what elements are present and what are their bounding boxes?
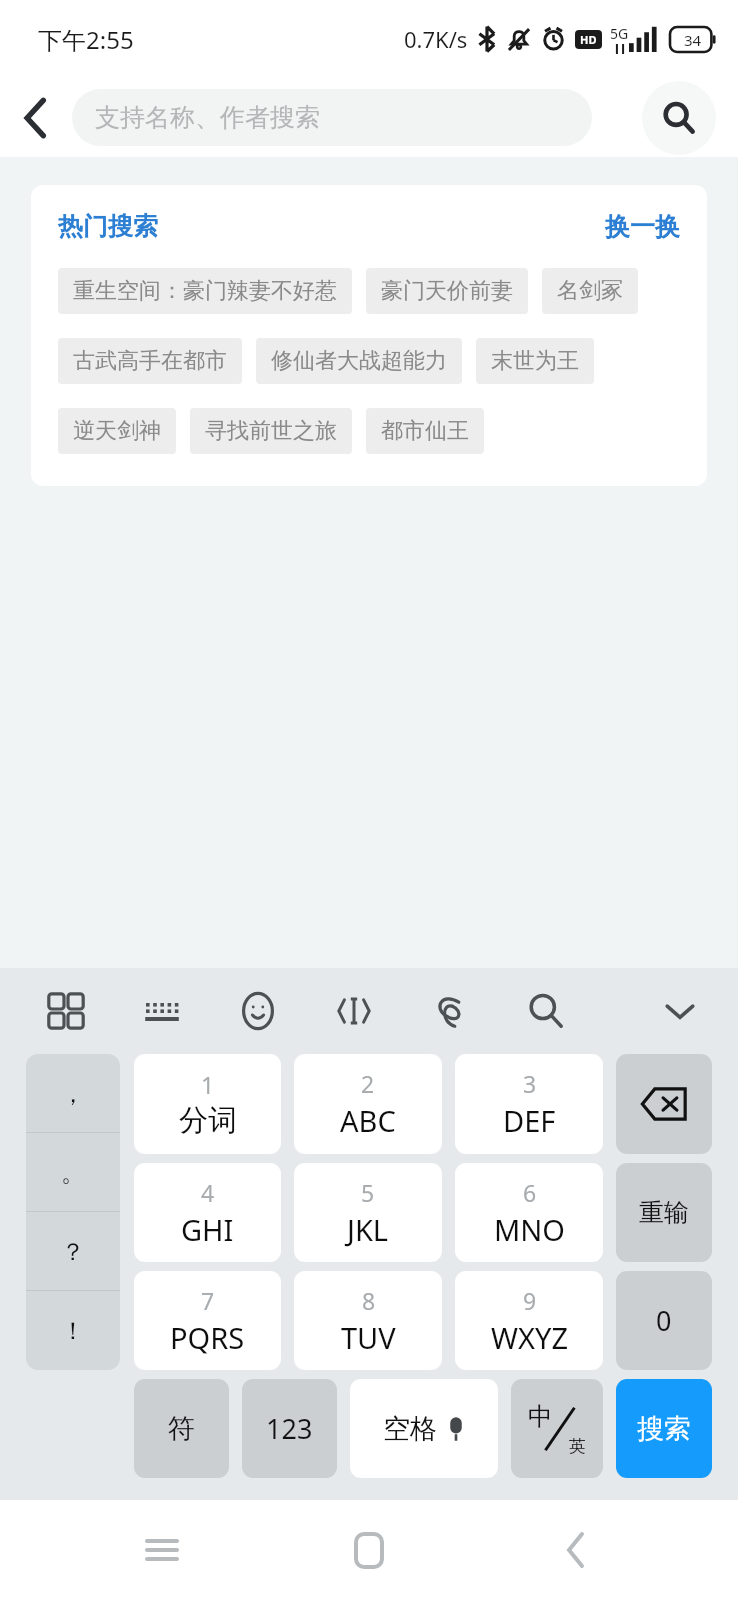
staticText: 支持名称、作者搜索 bbox=[95, 102, 320, 133]
button[interactable]: 4 bbox=[134, 1163, 281, 1262]
staticText: 古武高手在都市 bbox=[73, 347, 227, 375]
button[interactable] bbox=[616, 1054, 712, 1154]
staticText: ！ bbox=[61, 1316, 85, 1346]
button[interactable]: 支持名称、作者搜索 bbox=[72, 89, 592, 146]
button[interactable]: 名剑冢 bbox=[542, 268, 638, 314]
button[interactable]: 修仙者大战超能力 bbox=[256, 338, 462, 384]
staticText: 逆天剑神 bbox=[73, 417, 161, 445]
button[interactable]: Search bbox=[642, 81, 716, 155]
button[interactable]: 都市仙王 bbox=[366, 408, 484, 454]
button[interactable]: 7 bbox=[134, 1271, 281, 1370]
button[interactable]: 空格 bbox=[350, 1379, 498, 1478]
button[interactable]: 8 bbox=[294, 1271, 442, 1370]
button[interactable]: 寻找前世之旅 bbox=[190, 408, 352, 454]
staticText: 分词 bbox=[179, 1102, 237, 1139]
button[interactable]: Recents bbox=[117, 1505, 207, 1595]
button[interactable]: Keyboard bbox=[136, 985, 188, 1037]
staticText: 中 bbox=[528, 1401, 553, 1432]
staticText: 8 bbox=[362, 1285, 376, 1316]
staticText: TUV bbox=[341, 1318, 396, 1357]
button[interactable]: 3 bbox=[455, 1054, 603, 1154]
button[interactable]: Chinese English toggle bbox=[511, 1379, 603, 1478]
button[interactable]: 2 bbox=[294, 1054, 442, 1154]
button[interactable]: 9 bbox=[455, 1271, 603, 1370]
button[interactable]: Back bbox=[0, 82, 72, 154]
button[interactable]: 符 bbox=[134, 1379, 229, 1478]
staticText: ABC bbox=[340, 1101, 396, 1140]
staticText: 搜索 bbox=[637, 1412, 691, 1446]
staticText: 名剑冢 bbox=[557, 277, 623, 305]
staticText: 9 bbox=[523, 1285, 537, 1316]
staticText: ， bbox=[61, 1079, 85, 1109]
button[interactable]: 6 bbox=[455, 1163, 603, 1262]
button[interactable]: 重输 bbox=[616, 1163, 712, 1262]
button[interactable]: Clipboard bbox=[424, 985, 476, 1037]
staticText: 英 bbox=[569, 1436, 586, 1457]
staticText: 空格 bbox=[383, 1412, 437, 1446]
staticText: 3 bbox=[523, 1068, 537, 1099]
staticText: 下午2:55 bbox=[38, 23, 134, 56]
button[interactable]: 换一换 bbox=[605, 211, 680, 242]
button[interactable]: 123 bbox=[242, 1379, 337, 1478]
button[interactable]: Edit text bbox=[328, 985, 380, 1037]
button[interactable]: 1 bbox=[134, 1054, 281, 1154]
staticText: JKL bbox=[347, 1210, 389, 1249]
button[interactable]: 搜索 bbox=[616, 1379, 712, 1478]
staticText: HD bbox=[580, 32, 597, 47]
button[interactable]: 重生空间：豪门辣妻不好惹 bbox=[58, 268, 352, 314]
staticText: 0.7K/s bbox=[404, 24, 468, 54]
button[interactable]: 。 bbox=[26, 1133, 120, 1212]
button[interactable]: Home bbox=[324, 1505, 414, 1595]
button[interactable]: 末世为王 bbox=[476, 338, 594, 384]
button[interactable]: 0 bbox=[616, 1271, 712, 1370]
button[interactable]: ， bbox=[26, 1054, 120, 1133]
staticText: WXYZ bbox=[491, 1318, 568, 1357]
button[interactable]: 古武高手在都市 bbox=[58, 338, 242, 384]
button[interactable]: Back bbox=[531, 1505, 621, 1595]
staticText: 7 bbox=[201, 1285, 215, 1316]
staticText: 2 bbox=[361, 1068, 375, 1099]
staticText: 4 bbox=[201, 1177, 215, 1208]
staticText: 末世为王 bbox=[491, 347, 579, 375]
button[interactable]: Emoji bbox=[232, 985, 284, 1037]
staticText: 6 bbox=[523, 1177, 537, 1208]
staticText: 123 bbox=[266, 1410, 313, 1447]
staticText: 。 bbox=[61, 1158, 85, 1188]
staticText: 符 bbox=[168, 1412, 195, 1446]
staticText: GHI bbox=[181, 1210, 234, 1249]
staticText: 5G bbox=[610, 24, 629, 43]
button[interactable]: ？ bbox=[26, 1212, 120, 1291]
staticText: MNO bbox=[494, 1210, 565, 1249]
button[interactable]: ！ bbox=[26, 1291, 120, 1370]
button[interactable]: Search bbox=[520, 985, 572, 1037]
staticText: 热门搜索 bbox=[58, 211, 158, 242]
staticText: 修仙者大战超能力 bbox=[271, 347, 447, 375]
staticText: DEF bbox=[503, 1101, 556, 1140]
staticText: ？ bbox=[61, 1237, 85, 1267]
staticText: 豪门天价前妻 bbox=[381, 277, 513, 305]
staticText: 寻找前世之旅 bbox=[205, 417, 337, 445]
staticText: 1 bbox=[201, 1069, 215, 1100]
staticText: 5 bbox=[361, 1177, 375, 1208]
button[interactable]: Hide keyboard bbox=[654, 985, 706, 1037]
staticText: 0 bbox=[656, 1302, 672, 1339]
staticText: 重生空间：豪门辣妻不好惹 bbox=[73, 277, 337, 305]
staticText: PQRS bbox=[170, 1318, 245, 1357]
staticText: 换一换 bbox=[605, 211, 680, 242]
staticText: 都市仙王 bbox=[381, 417, 469, 445]
button[interactable]: 逆天剑神 bbox=[58, 408, 176, 454]
staticText: 重输 bbox=[639, 1197, 689, 1228]
button[interactable]: 5 bbox=[294, 1163, 442, 1262]
staticText: 34 bbox=[684, 30, 702, 50]
button[interactable]: 豪门天价前妻 bbox=[366, 268, 528, 314]
button[interactable]: Keyboard layouts bbox=[40, 985, 92, 1037]
